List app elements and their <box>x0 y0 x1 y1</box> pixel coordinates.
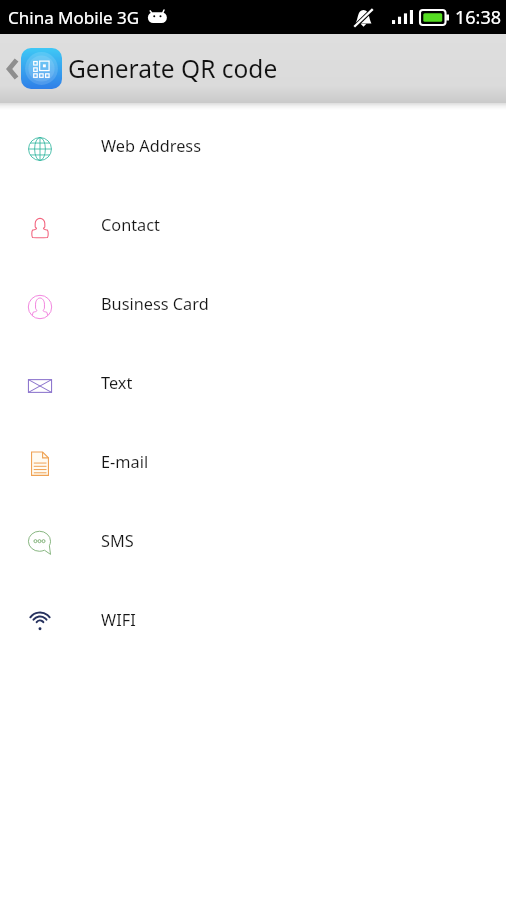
staticText: SMS <box>101 530 134 552</box>
staticText: Business Card <box>101 293 209 315</box>
button[interactable]: Contact <box>0 185 506 264</box>
button[interactable]: SMS <box>0 501 506 580</box>
button[interactable]: Web Address <box>0 106 506 185</box>
button[interactable]: E-mail <box>0 422 506 501</box>
button[interactable]: Business Card <box>0 264 506 343</box>
staticText: 16:38 <box>455 5 502 30</box>
staticText: WIFI <box>101 609 136 631</box>
button[interactable]: Text <box>0 343 506 422</box>
button[interactable]: Back <box>0 34 506 103</box>
staticText: Web Address <box>101 135 201 157</box>
other: Back <box>6 58 18 80</box>
staticText: Text <box>101 372 133 394</box>
staticText: Contact <box>101 214 160 236</box>
staticText: E-mail <box>101 451 149 473</box>
staticText: China Mobile 3G <box>8 6 140 29</box>
staticText: Generate QR code <box>68 52 278 85</box>
button[interactable]: WIFI <box>0 580 506 659</box>
